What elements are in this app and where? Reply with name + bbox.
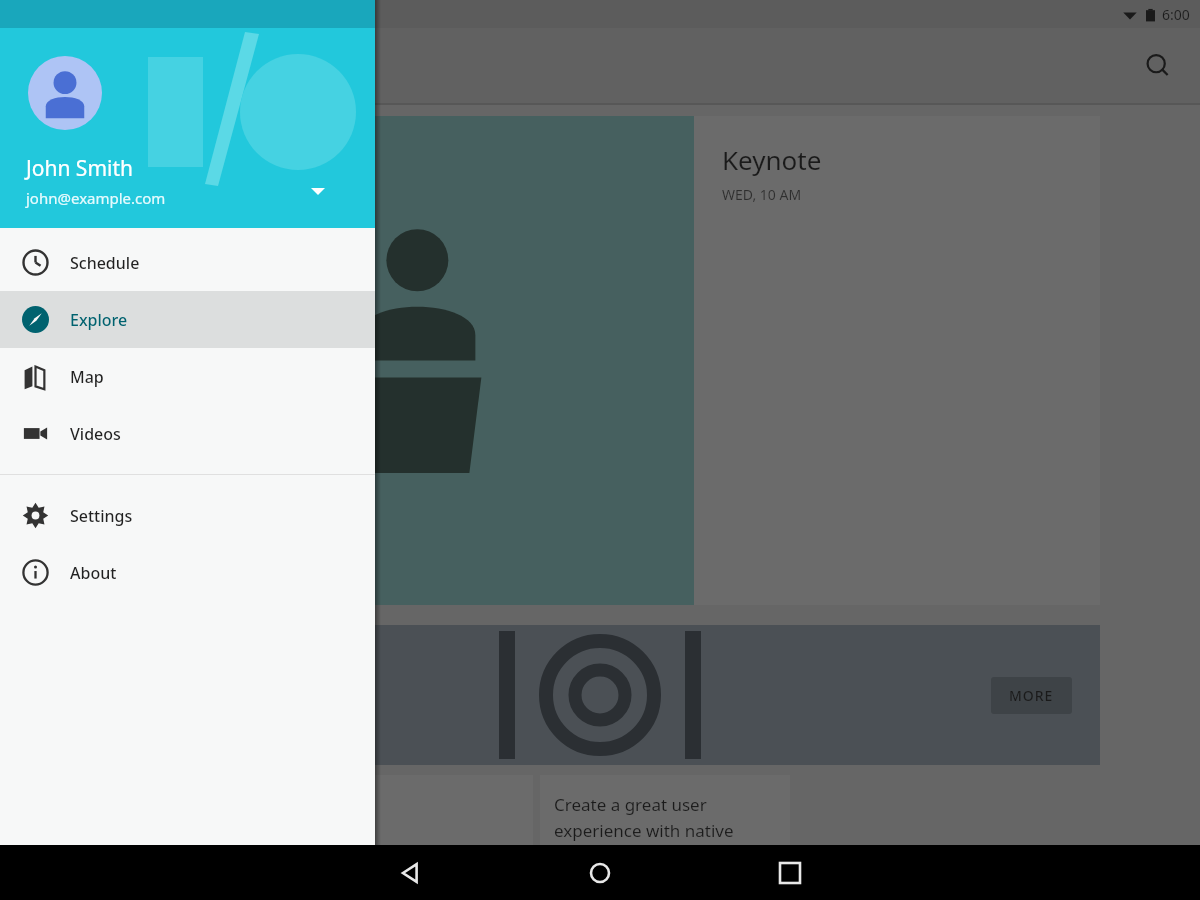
staticText: WED, 10 AM: [722, 185, 802, 204]
button[interactable]: MORE: [991, 677, 1072, 714]
button[interactable]: Create a great user: [540, 775, 790, 845]
staticText: 6:00: [1162, 5, 1190, 24]
staticText: Create a great user: [554, 793, 707, 816]
button[interactable]: Keynote: [200, 116, 1100, 605]
button[interactable]: Home: [576, 845, 624, 900]
button[interactable]: Expand account list: [303, 176, 333, 206]
staticText: Keynote: [722, 142, 822, 177]
button[interactable]: Videos: [0, 405, 375, 462]
staticText: experience with native: [554, 819, 734, 842]
staticText: Explore: [70, 309, 128, 331]
staticText: About: [70, 562, 117, 584]
staticText: Map: [70, 366, 104, 388]
staticText: john@example.com: [26, 188, 166, 208]
button[interactable]: About: [0, 544, 375, 601]
button[interactable]: Recent apps: [766, 845, 814, 900]
staticText: John Smith: [26, 154, 133, 183]
button[interactable]: Back: [386, 845, 434, 900]
staticText: MORE: [1009, 686, 1054, 705]
button[interactable]: Settings: [0, 487, 375, 544]
button[interactable]: Explore: [0, 291, 375, 348]
staticText: Settings: [70, 505, 133, 527]
staticText: Schedule: [70, 252, 140, 274]
button[interactable]: MORE: [200, 625, 1100, 765]
button[interactable]: Search: [1134, 42, 1182, 90]
staticText: Videos: [70, 423, 121, 445]
button[interactable]: Map: [0, 348, 375, 405]
button[interactable]: revenue from: [200, 775, 533, 845]
button[interactable]: Schedule: [0, 234, 375, 291]
